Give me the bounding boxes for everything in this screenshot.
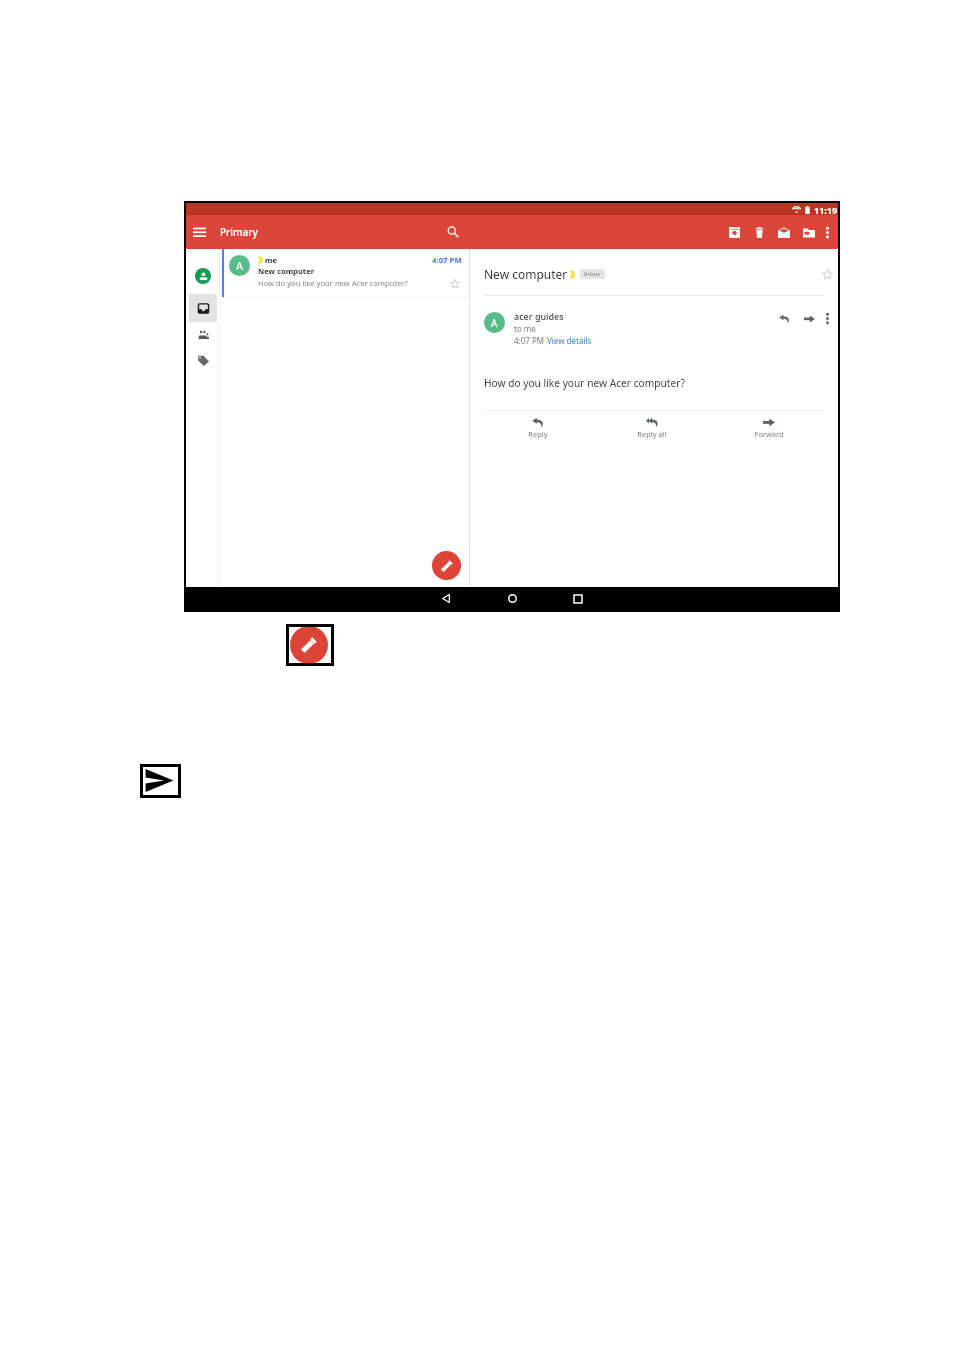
button[interactable]: Forward: [801, 311, 817, 327]
button[interactable]: Forward: [743, 415, 795, 441]
staticText: A: [491, 316, 498, 330]
button[interactable]: Send: [140, 764, 181, 798]
staticText: 4:07 PM: [432, 255, 462, 266]
button[interactable]: Star: [449, 278, 461, 290]
staticText: Inbox: [584, 270, 601, 278]
button[interactable]: Primary inbox: [189, 294, 217, 322]
staticText: to me: [514, 323, 536, 334]
button[interactable]: Home: [500, 587, 524, 610]
staticText: How do you like your new Acer computer?: [258, 278, 408, 288]
staticText: 4:07 PM: [514, 335, 547, 346]
staticText: acer guides: [514, 310, 564, 322]
button[interactable]: Mark as unread: [776, 225, 791, 240]
button[interactable]: Reply: [776, 311, 792, 327]
button[interactable]: Reply: [512, 415, 564, 441]
button[interactable]: Recent apps: [566, 587, 590, 610]
staticText: Reply all: [626, 429, 678, 439]
button[interactable]: Star: [820, 267, 834, 281]
button[interactable]: View details: [547, 335, 592, 346]
button[interactable]: Back: [434, 587, 458, 610]
staticText: Reply: [512, 429, 564, 439]
button[interactable]: Delete: [752, 225, 767, 240]
button[interactable]: Social: [189, 323, 217, 345]
staticText: Primary: [220, 225, 258, 239]
staticText: A: [236, 258, 244, 273]
button[interactable]: Account: [195, 268, 211, 284]
button[interactable]: More options: [820, 225, 834, 239]
button[interactable]: Conversation: me, New computer: [220, 249, 469, 297]
staticText: me: [265, 255, 277, 265]
button[interactable]: Compose: [290, 626, 328, 664]
staticText: How do you like your new Acer computer?: [484, 376, 685, 390]
staticText: New computer: [484, 266, 568, 282]
button[interactable]: Inbox: [580, 269, 605, 279]
staticText: Forward: [743, 429, 795, 439]
button[interactable]: Archive: [727, 225, 742, 240]
staticText: 11:19: [814, 204, 838, 216]
button[interactable]: Compose: [432, 551, 461, 580]
button[interactable]: Search: [444, 223, 462, 241]
button[interactable]: Move to: [801, 225, 816, 240]
button[interactable]: More options: [820, 311, 834, 325]
staticText: New computer: [258, 266, 315, 276]
button[interactable]: Reply all: [626, 415, 678, 441]
button[interactable]: Promotions: [189, 349, 217, 371]
button[interactable]: Navigation menu: [190, 223, 208, 241]
